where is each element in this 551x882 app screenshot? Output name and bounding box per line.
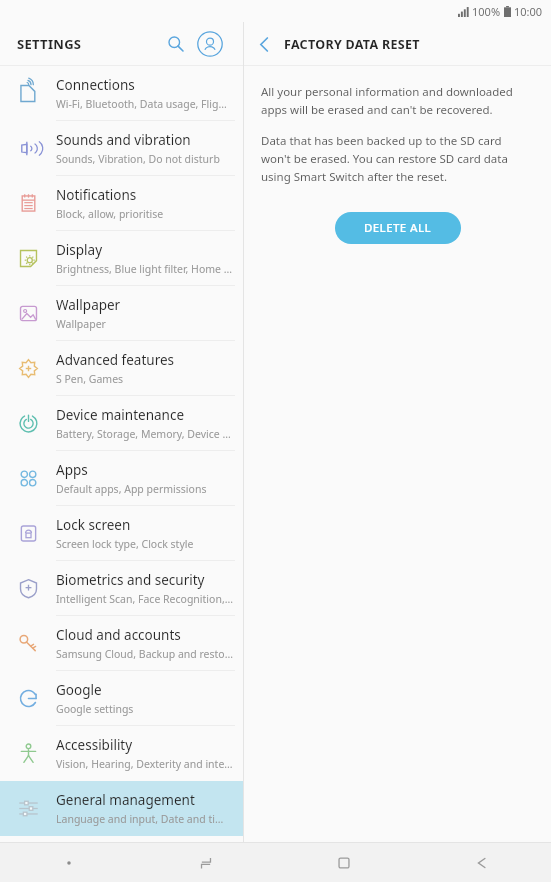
staticText: Default apps, App permissions xyxy=(56,482,207,496)
button[interactable]: Recents xyxy=(137,843,275,882)
staticText: Data that has been backed up to the SD c… xyxy=(261,133,534,184)
staticText: Google settings xyxy=(56,702,134,716)
staticText: Advanced features xyxy=(56,351,175,369)
button[interactable]: Cloud and accounts xyxy=(0,616,243,671)
staticText: Display xyxy=(56,241,103,259)
staticText: General management xyxy=(56,791,195,809)
staticText: Sounds and vibration xyxy=(56,131,191,149)
button[interactable]: Sounds and vibration xyxy=(0,121,243,176)
button[interactable]: Device maintenance xyxy=(0,396,243,451)
staticText: DELETE ALL xyxy=(364,220,432,236)
button[interactable]: Account xyxy=(193,27,227,61)
button[interactable]: Notifications xyxy=(0,176,243,231)
staticText: Wi-Fi, Bluetooth, Data usage, Flight… xyxy=(56,97,233,111)
staticText: 100% xyxy=(472,4,501,19)
staticText: Brightness, Blue light filter, Home sc… xyxy=(56,262,233,276)
button[interactable]: Advanced features xyxy=(0,341,243,396)
staticText: Cloud and accounts xyxy=(56,626,181,644)
button[interactable]: Wallpaper xyxy=(0,286,243,341)
staticText: All your personal information and downlo… xyxy=(261,84,534,117)
staticText: Lock screen xyxy=(56,516,131,534)
staticText: Apps xyxy=(56,461,88,479)
button[interactable]: Hide navigation bar xyxy=(0,843,137,882)
staticText: Wallpaper xyxy=(56,317,106,331)
button[interactable]: Search xyxy=(159,27,193,61)
button[interactable]: Connections xyxy=(0,66,243,121)
button[interactable]: General management xyxy=(0,781,243,836)
button[interactable]: Display xyxy=(0,231,243,286)
button[interactable]: Back xyxy=(244,24,284,64)
button[interactable]: Lock screen xyxy=(0,506,243,561)
staticText: Notifications xyxy=(56,186,137,204)
staticText: Connections xyxy=(56,76,135,94)
button[interactable]: Apps xyxy=(0,451,243,506)
staticText: S Pen, Games xyxy=(56,372,124,386)
button[interactable]: DELETE ALL xyxy=(335,212,461,244)
staticText: Sounds, Vibration, Do not disturb xyxy=(56,152,220,166)
staticText: Device maintenance xyxy=(56,406,185,424)
button[interactable]: Biometrics and security xyxy=(0,561,243,616)
button[interactable]: Google xyxy=(0,671,243,726)
staticText: Battery, Storage, Memory, Device se… xyxy=(56,427,233,441)
button[interactable]: Accessibility xyxy=(0,726,243,781)
button[interactable]: Back xyxy=(413,843,551,882)
staticText: Screen lock type, Clock style xyxy=(56,537,194,551)
staticText: Wallpaper xyxy=(56,296,121,314)
staticText: Samsung Cloud, Backup and restor… xyxy=(56,647,233,661)
staticText: FACTORY DATA RESET xyxy=(284,36,420,53)
staticText: Google xyxy=(56,681,102,699)
staticText: Accessibility xyxy=(56,736,133,754)
staticText: Block, allow, prioritise xyxy=(56,207,164,221)
staticText: Language and input, Date and time,… xyxy=(56,812,233,826)
button[interactable]: Home xyxy=(275,843,413,882)
staticText: Biometrics and security xyxy=(56,571,205,589)
staticText: 10:00 xyxy=(514,4,543,19)
staticText: Vision, Hearing, Dexterity and intera… xyxy=(56,757,233,771)
staticText: Intelligent Scan, Face Recognition,… xyxy=(56,592,233,606)
staticText: SETTINGS xyxy=(17,35,82,53)
